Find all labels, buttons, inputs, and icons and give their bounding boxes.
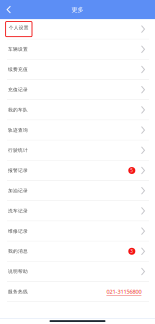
staticText: 服务热线 [8, 289, 28, 295]
button[interactable]: 加油记录 [0, 181, 155, 201]
staticText: 3 [130, 248, 133, 254]
staticText: 我的车队 [8, 107, 28, 113]
button[interactable]: 我的消息 [0, 241, 155, 262]
button[interactable]: 轨迹查询 [0, 120, 155, 140]
staticText: 充值记录 [8, 87, 28, 93]
button[interactable]: 充值记录 [0, 80, 155, 100]
staticText: 车辆设置 [8, 46, 28, 52]
staticText: 5 [130, 167, 133, 174]
staticText: 洗车记录 [8, 208, 28, 214]
staticText: 我的消息 [8, 248, 28, 254]
staticText: 维修记录 [8, 228, 28, 234]
staticText: 更多 [71, 6, 83, 13]
button[interactable]: Back [0, 0, 24, 19]
staticText: 报警记录 [8, 168, 28, 173]
button[interactable]: 我的车队 [0, 100, 155, 120]
staticText: 轨迹查询 [8, 127, 28, 133]
staticText: 行驶统计 [8, 147, 28, 153]
button[interactable]: 车辆设置 [0, 39, 155, 60]
staticText: 021-31156800 [106, 288, 141, 295]
button[interactable]: 说明帮助 [0, 262, 155, 282]
button[interactable]: 报警记录 [0, 161, 155, 181]
button[interactable]: 续费充值 [0, 60, 155, 80]
button[interactable]: 个人设置 [0, 19, 155, 39]
staticText: 续费充值 [8, 67, 28, 72]
button[interactable]: 服务热线 [0, 282, 155, 302]
staticText: 说明帮助 [8, 269, 28, 274]
button[interactable]: 行驶统计 [0, 140, 155, 161]
button[interactable]: 维修记录 [0, 221, 155, 241]
button[interactable]: 洗车记录 [0, 201, 155, 221]
staticText: 个人设置 [9, 25, 29, 31]
staticText: 加油记录 [8, 188, 28, 194]
